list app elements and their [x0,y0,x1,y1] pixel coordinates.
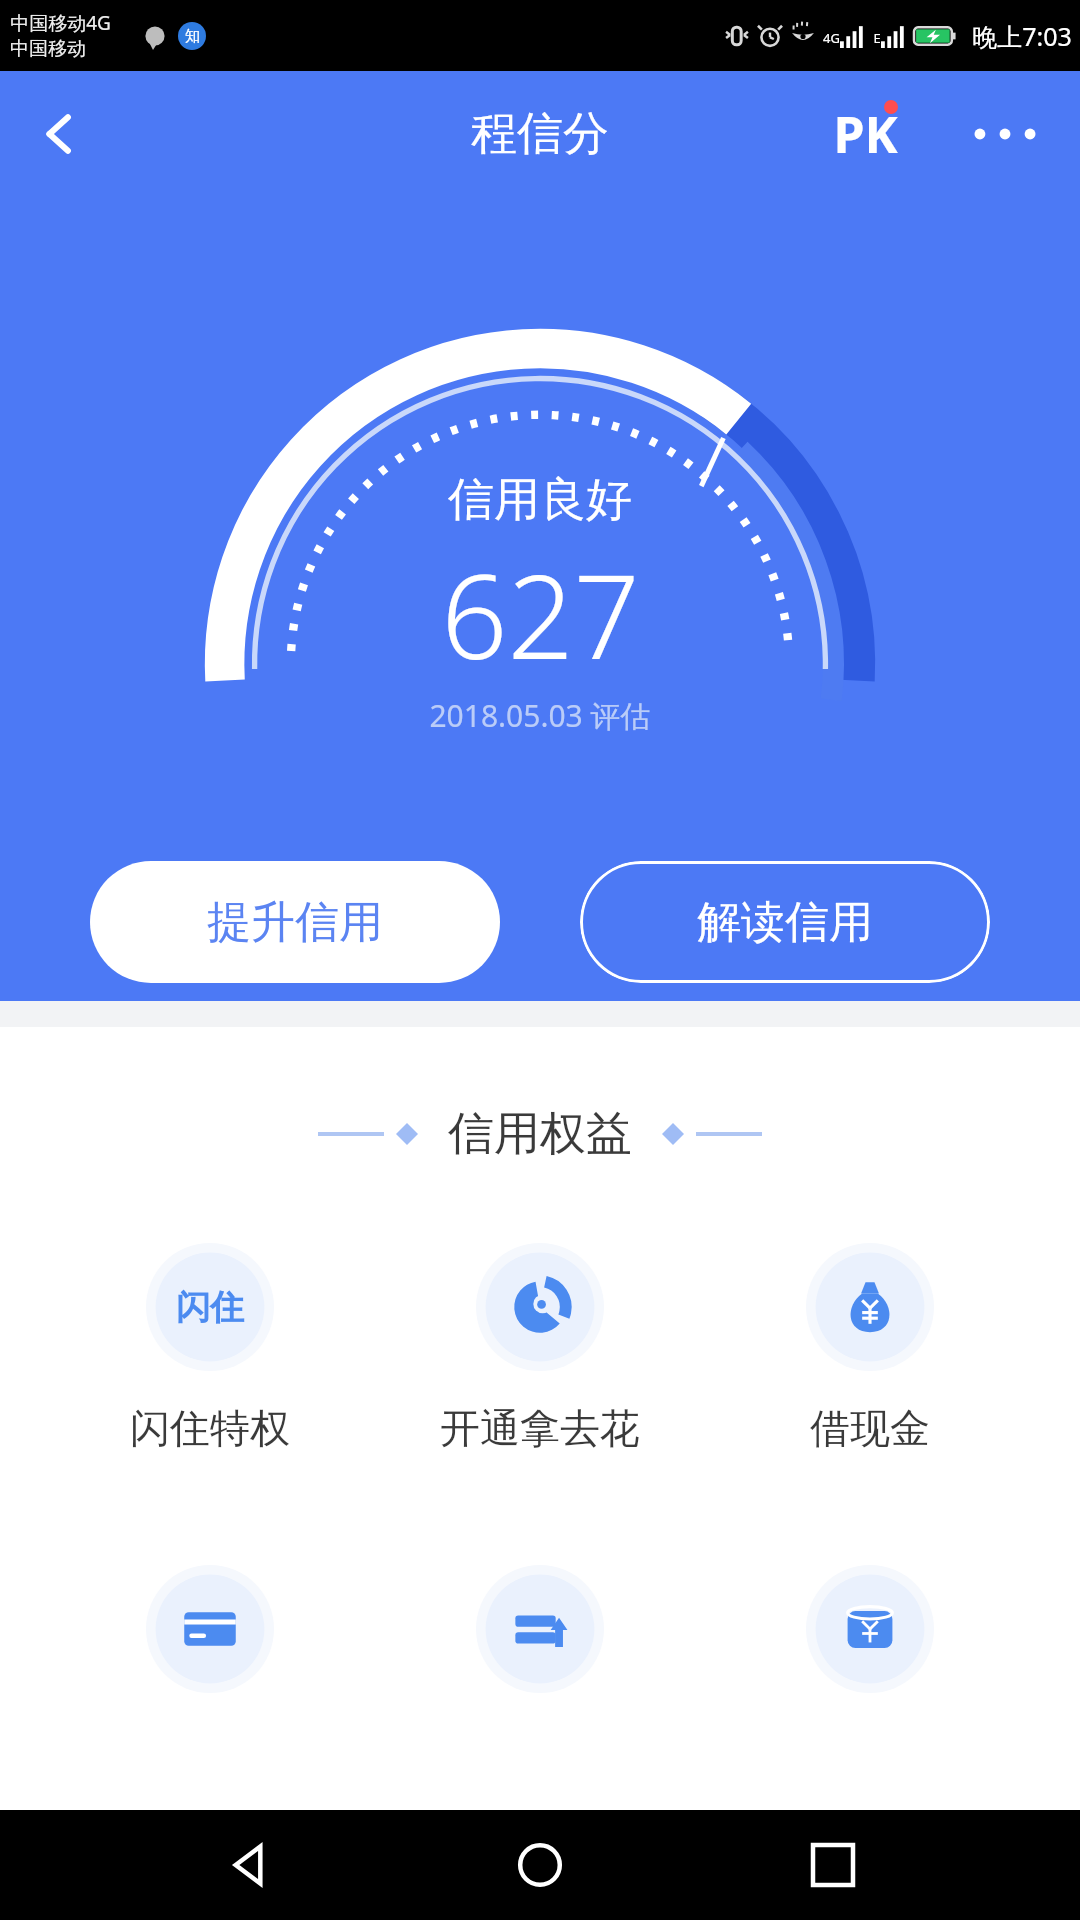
button[interactable]: CARD [90,1565,330,1693]
button[interactable]: More options [960,89,1050,179]
button[interactable]: Recent apps [788,1820,878,1910]
staticText: 开通拿去花 [440,1403,640,1453]
button[interactable]: 借现金 [750,1243,990,1453]
button[interactable]: 开通拿去花 [420,1243,660,1453]
staticText: 晚上7:03 [972,19,1072,53]
button[interactable]: STACK [420,1565,660,1693]
button[interactable]: Home [495,1820,585,1910]
button[interactable]: Back [203,1820,293,1910]
staticText: 中国移动4G [10,10,111,36]
staticText: 提升信用 [207,895,383,950]
staticText: 闪住 [176,1286,244,1329]
staticText: 2018.05.03 评估 [429,695,651,736]
staticText: 借现金 [810,1403,930,1453]
staticText: 知 [185,27,200,46]
staticText: 闪住特权 [130,1403,290,1453]
staticText: 4G [823,29,840,47]
button[interactable]: 闪住 [90,1243,330,1453]
button[interactable]: Back [20,94,100,174]
staticText: E [873,29,881,47]
staticText: 信用权益 [448,1105,632,1163]
staticText: PK [833,100,898,168]
button[interactable]: PK [815,94,915,174]
staticText: 程信分 [471,105,609,163]
button[interactable]: JAR [750,1565,990,1693]
button[interactable]: 解读信用 [580,861,990,983]
staticText: 解读信用 [697,895,873,950]
staticText: 信用良好 [448,471,632,529]
staticText: 中国移动 [10,37,86,61]
staticText: 627 [441,535,640,693]
button[interactable]: 提升信用 [90,861,500,983]
